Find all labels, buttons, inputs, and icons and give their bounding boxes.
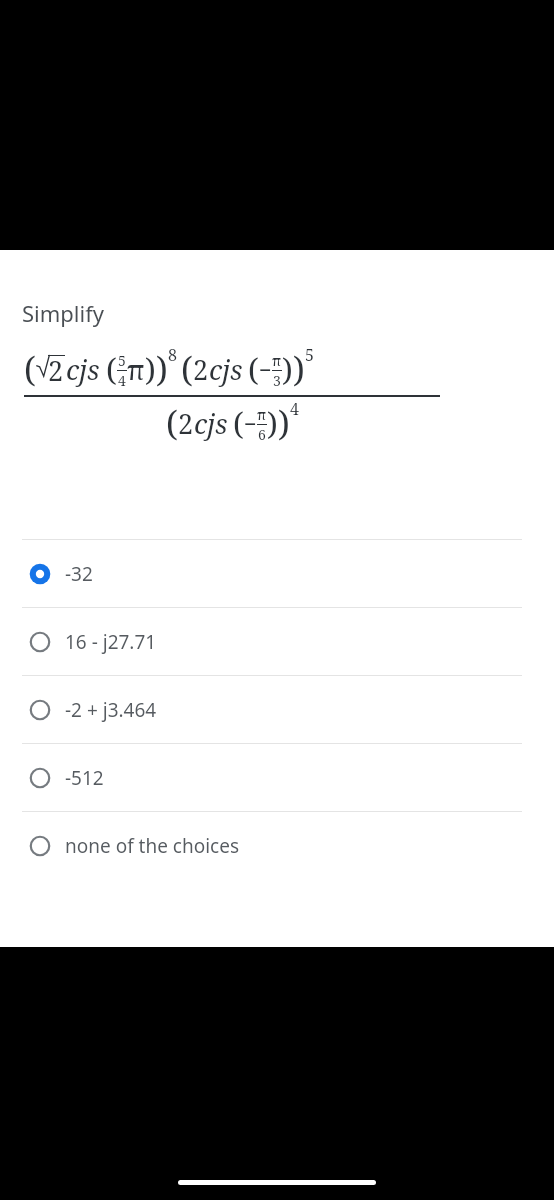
button[interactable]: 16 - j27.71 <box>0 608 554 675</box>
staticText: ) <box>145 348 156 390</box>
staticText: 3 <box>273 371 281 390</box>
staticText: ) <box>156 346 168 392</box>
staticText: 5 <box>305 344 314 366</box>
staticText: π <box>257 405 267 424</box>
staticText: -32 <box>65 561 93 587</box>
staticText: 2 <box>48 352 64 389</box>
staticText: -2 + j3.464 <box>65 697 157 723</box>
button[interactable]: none of the choices <box>0 812 554 879</box>
staticText: π <box>272 351 282 370</box>
staticText: 4 <box>118 371 126 390</box>
staticText: 16 - j27.71 <box>65 629 157 655</box>
staticText: ) <box>267 402 278 444</box>
staticText: − <box>244 408 257 438</box>
staticText: 4 <box>290 398 299 420</box>
staticText: ( <box>248 348 259 390</box>
staticText: cjs <box>209 351 243 388</box>
staticText: ( <box>181 346 193 392</box>
staticText: ( <box>24 346 36 392</box>
staticText: π <box>127 351 145 388</box>
staticText: -512 <box>65 765 104 791</box>
staticText: ( <box>166 400 178 446</box>
staticText: 2 <box>178 405 194 442</box>
staticText: cjs <box>66 351 100 388</box>
staticText: Simplify <box>22 298 104 328</box>
button[interactable]: -32 <box>0 540 554 607</box>
staticText: ( <box>233 402 244 444</box>
staticText: none of the choices <box>65 833 240 859</box>
staticText: − <box>259 354 272 384</box>
button[interactable]: -512 <box>0 744 554 811</box>
staticText: ) <box>278 400 290 446</box>
staticText: 8 <box>168 344 177 366</box>
button[interactable]: -2 + j3.464 <box>0 676 554 743</box>
staticText: 2 <box>193 351 209 388</box>
staticText: ) <box>293 346 305 392</box>
staticText: ( <box>106 348 117 390</box>
staticText: 6 <box>258 425 266 444</box>
staticText: cjs <box>194 405 228 442</box>
staticText: ) <box>282 348 293 390</box>
staticText: 5 <box>118 351 126 370</box>
